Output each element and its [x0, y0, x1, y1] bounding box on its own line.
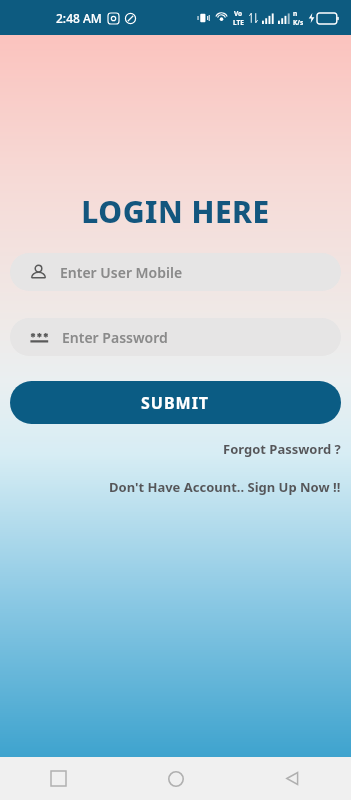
- button[interactable]: Recent apps: [0, 757, 117, 800]
- staticText: Enter Password: [62, 328, 168, 347]
- staticText: Vo: [234, 9, 243, 18]
- button[interactable]: Enter Password: [10, 318, 341, 356]
- staticText: K/s: [293, 18, 304, 27]
- button[interactable]: Enter User Mobile: [10, 253, 341, 291]
- button[interactable]: Forgot Password ?: [213, 437, 351, 461]
- staticText: Enter User Mobile: [60, 263, 183, 282]
- button[interactable]: Back: [234, 757, 351, 800]
- button[interactable]: Home: [117, 757, 234, 800]
- staticText: SUBMIT: [141, 392, 210, 414]
- staticText: 2:48 AM: [56, 10, 102, 26]
- staticText: LOGIN HERE: [0, 191, 351, 232]
- staticText: LTE: [233, 18, 244, 27]
- button[interactable]: SUBMIT: [10, 381, 341, 424]
- button[interactable]: Don't Have Account.. Sign Up Now !!: [99, 475, 351, 499]
- staticText: n: [293, 9, 298, 18]
